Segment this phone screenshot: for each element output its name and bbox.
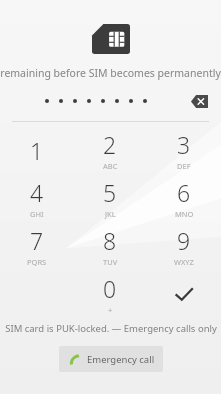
staticText: 2 xyxy=(103,129,117,160)
staticText: 6 xyxy=(177,177,191,208)
staticText: ABC xyxy=(103,161,118,171)
button[interactable]: Emergency call xyxy=(59,346,163,372)
button[interactable]: 8 xyxy=(73,222,147,270)
staticText: 8 xyxy=(103,225,117,256)
staticText: TUV xyxy=(103,257,118,267)
staticText: 7 xyxy=(30,225,44,256)
button[interactable]: Enter xyxy=(147,270,221,318)
staticText: 9 xyxy=(177,225,191,256)
staticText: 0 xyxy=(103,273,117,304)
staticText: MNO xyxy=(175,209,194,219)
staticText: 5 xyxy=(103,177,117,208)
button[interactable]: 7 xyxy=(0,222,73,270)
button[interactable]: 5 xyxy=(73,174,147,222)
button[interactable]: Backspace xyxy=(187,90,211,112)
staticText: WXYZ xyxy=(174,257,194,267)
button[interactable]: 3 xyxy=(147,126,221,174)
staticText: SIM card is PUK-locked. — Emergency call… xyxy=(5,322,217,335)
button[interactable]: 9 xyxy=(147,222,221,270)
staticText: + xyxy=(108,305,113,315)
staticText: Emergency call xyxy=(87,353,155,366)
staticText: JKL xyxy=(105,209,116,219)
button[interactable]: 4 xyxy=(0,174,73,222)
staticText: GHI xyxy=(30,209,44,219)
staticText: DEF xyxy=(177,161,191,171)
staticText: remaining before SIM becomes permanently… xyxy=(0,66,221,80)
staticText: 4 xyxy=(30,177,44,208)
staticText: 3 xyxy=(177,129,191,160)
button[interactable]: 6 xyxy=(147,174,221,222)
staticText: PQRS xyxy=(27,257,47,267)
button[interactable]: 1 xyxy=(0,126,73,174)
staticText: 1 xyxy=(30,135,44,166)
button[interactable]: 0 xyxy=(73,270,147,318)
button[interactable]: 2 xyxy=(73,126,147,174)
